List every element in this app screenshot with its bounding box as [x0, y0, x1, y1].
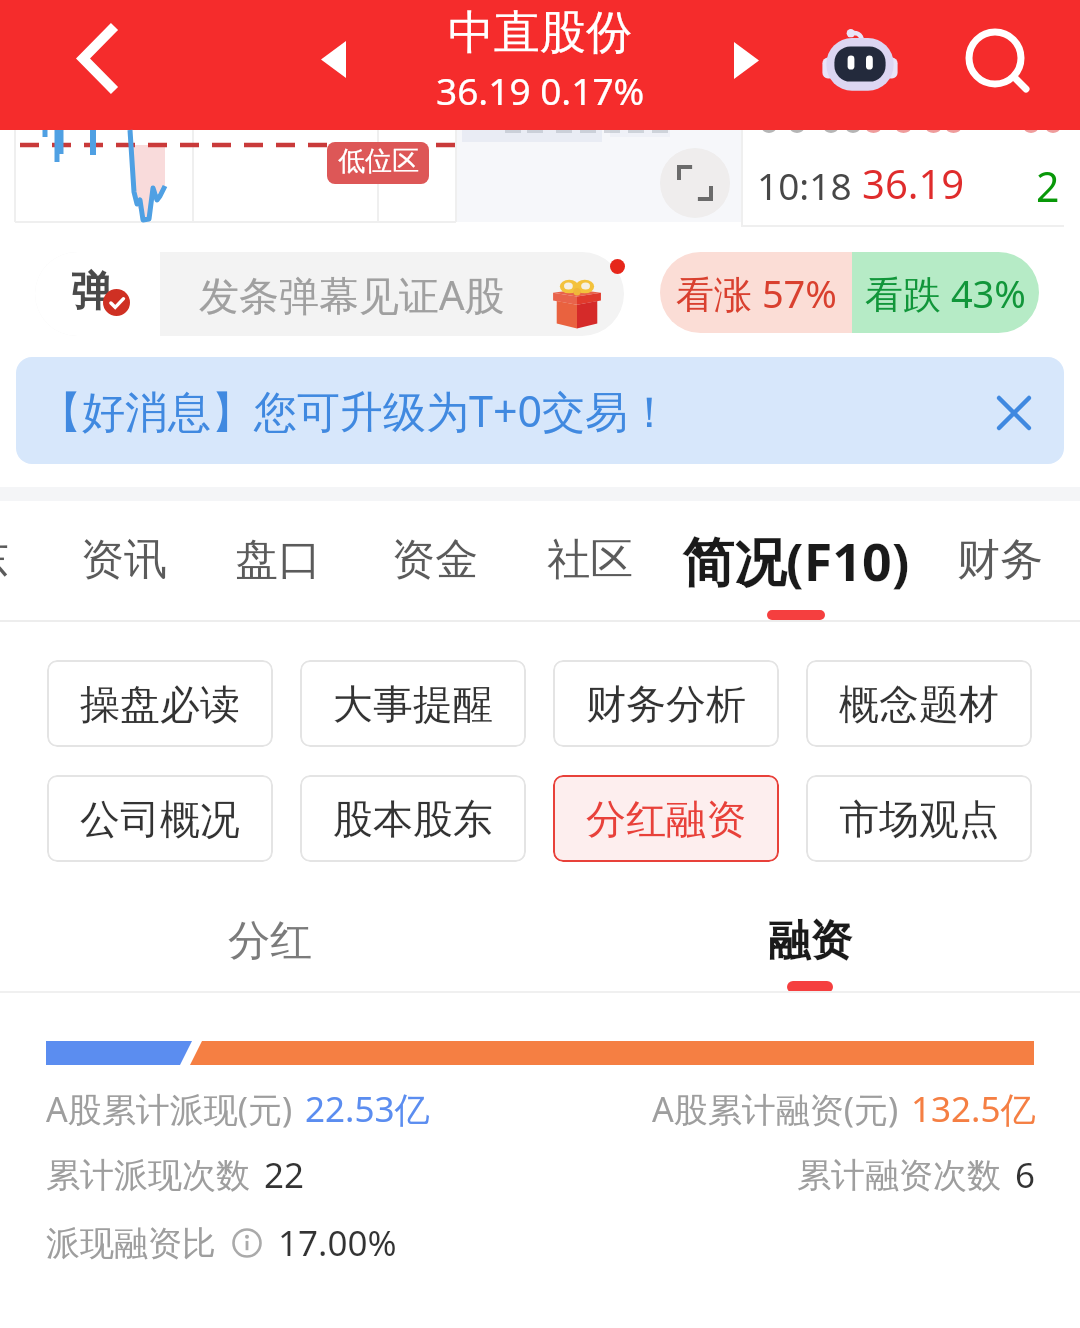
button[interactable]: 分红 [180, 886, 360, 993]
staticText: A股累计融资(元) [652, 1086, 899, 1132]
staticText: 看涨 57% [676, 267, 837, 319]
staticText: 累计融资次数 [797, 1154, 1001, 1197]
button[interactable]: Next stock [734, 42, 759, 79]
staticText: 17.00% [278, 1219, 397, 1267]
staticText: 10:18 [757, 160, 852, 210]
staticText: 22.53亿 [305, 1085, 430, 1133]
staticText: 分红 [228, 915, 312, 968]
staticText: 盘口 [235, 533, 321, 587]
staticText: 市场观点 [839, 794, 999, 844]
staticText: 操盘必读 [80, 679, 240, 729]
staticText: 36.19 0.17% [436, 65, 645, 115]
button[interactable]: 资金 [370, 501, 500, 622]
button[interactable]: 弹 [35, 252, 624, 336]
button[interactable]: Close [986, 385, 1042, 441]
staticText: 发条弹幕见证A股 [199, 267, 505, 322]
staticText: 财务 [957, 533, 1043, 587]
button[interactable]: Fullscreen [660, 148, 730, 218]
button[interactable]: 融资 [720, 886, 900, 993]
staticText: 股本股东 [333, 794, 493, 844]
button[interactable]: 大事提醒 [300, 660, 526, 747]
staticText: 派现融资比 [46, 1222, 216, 1265]
staticText: A股累计派现(元) [46, 1086, 293, 1132]
button[interactable]: Search [955, 18, 1037, 100]
staticText: 132.5亿 [911, 1085, 1036, 1133]
staticText: 22 [264, 1151, 305, 1199]
staticText: 资金 [392, 533, 478, 587]
button[interactable]: 股本股东 [300, 775, 526, 862]
staticText: 分红融资 [586, 794, 746, 844]
staticText: 东 [0, 533, 9, 587]
staticText: 2 [1036, 158, 1060, 214]
staticText: 累计派现次数 [46, 1154, 250, 1197]
staticText: 简况(F10) [682, 525, 910, 596]
button[interactable]: 概念题材 [806, 660, 1032, 747]
staticText: 融资 [768, 915, 852, 968]
staticText: 弹 [71, 266, 112, 318]
staticText: 6 [1015, 1151, 1036, 1199]
button[interactable]: 简况(F10) [671, 501, 921, 622]
staticText: 概念题材 [839, 679, 999, 729]
staticText: 社区 [547, 533, 633, 587]
button[interactable]: Previous stock [321, 41, 346, 78]
staticText: 大事提醒 [333, 679, 493, 729]
staticText: 36.19 [862, 156, 965, 210]
staticText: 低位区 [338, 144, 419, 178]
button[interactable]: 操盘必读 [47, 660, 273, 747]
staticText: 中直股份 [448, 4, 632, 62]
staticText: 财务分析 [586, 679, 746, 729]
button[interactable]: 东 [0, 501, 52, 622]
button[interactable]: 公司概况 [47, 775, 273, 862]
button[interactable]: 【好消息】您可升级为T+0交易！ [39, 357, 1042, 464]
button[interactable]: 盘口 [213, 501, 343, 622]
staticText: 资讯 [81, 533, 167, 587]
button[interactable]: 财务 [935, 501, 1065, 622]
staticText: 公司概况 [80, 794, 240, 844]
button[interactable]: 资讯 [59, 501, 189, 622]
button[interactable]: 分红融资 [553, 775, 779, 862]
button[interactable]: 财务分析 [553, 660, 779, 747]
staticText: 【好消息】您可升级为T+0交易！ [39, 381, 986, 440]
staticText: 看跌 43% [865, 267, 1026, 319]
button[interactable]: AI assistant [820, 24, 900, 104]
button[interactable]: 看涨 57% [660, 252, 1039, 333]
button[interactable]: 市场观点 [806, 775, 1032, 862]
button[interactable]: Back [55, 16, 139, 100]
button[interactable]: 社区 [525, 501, 655, 622]
